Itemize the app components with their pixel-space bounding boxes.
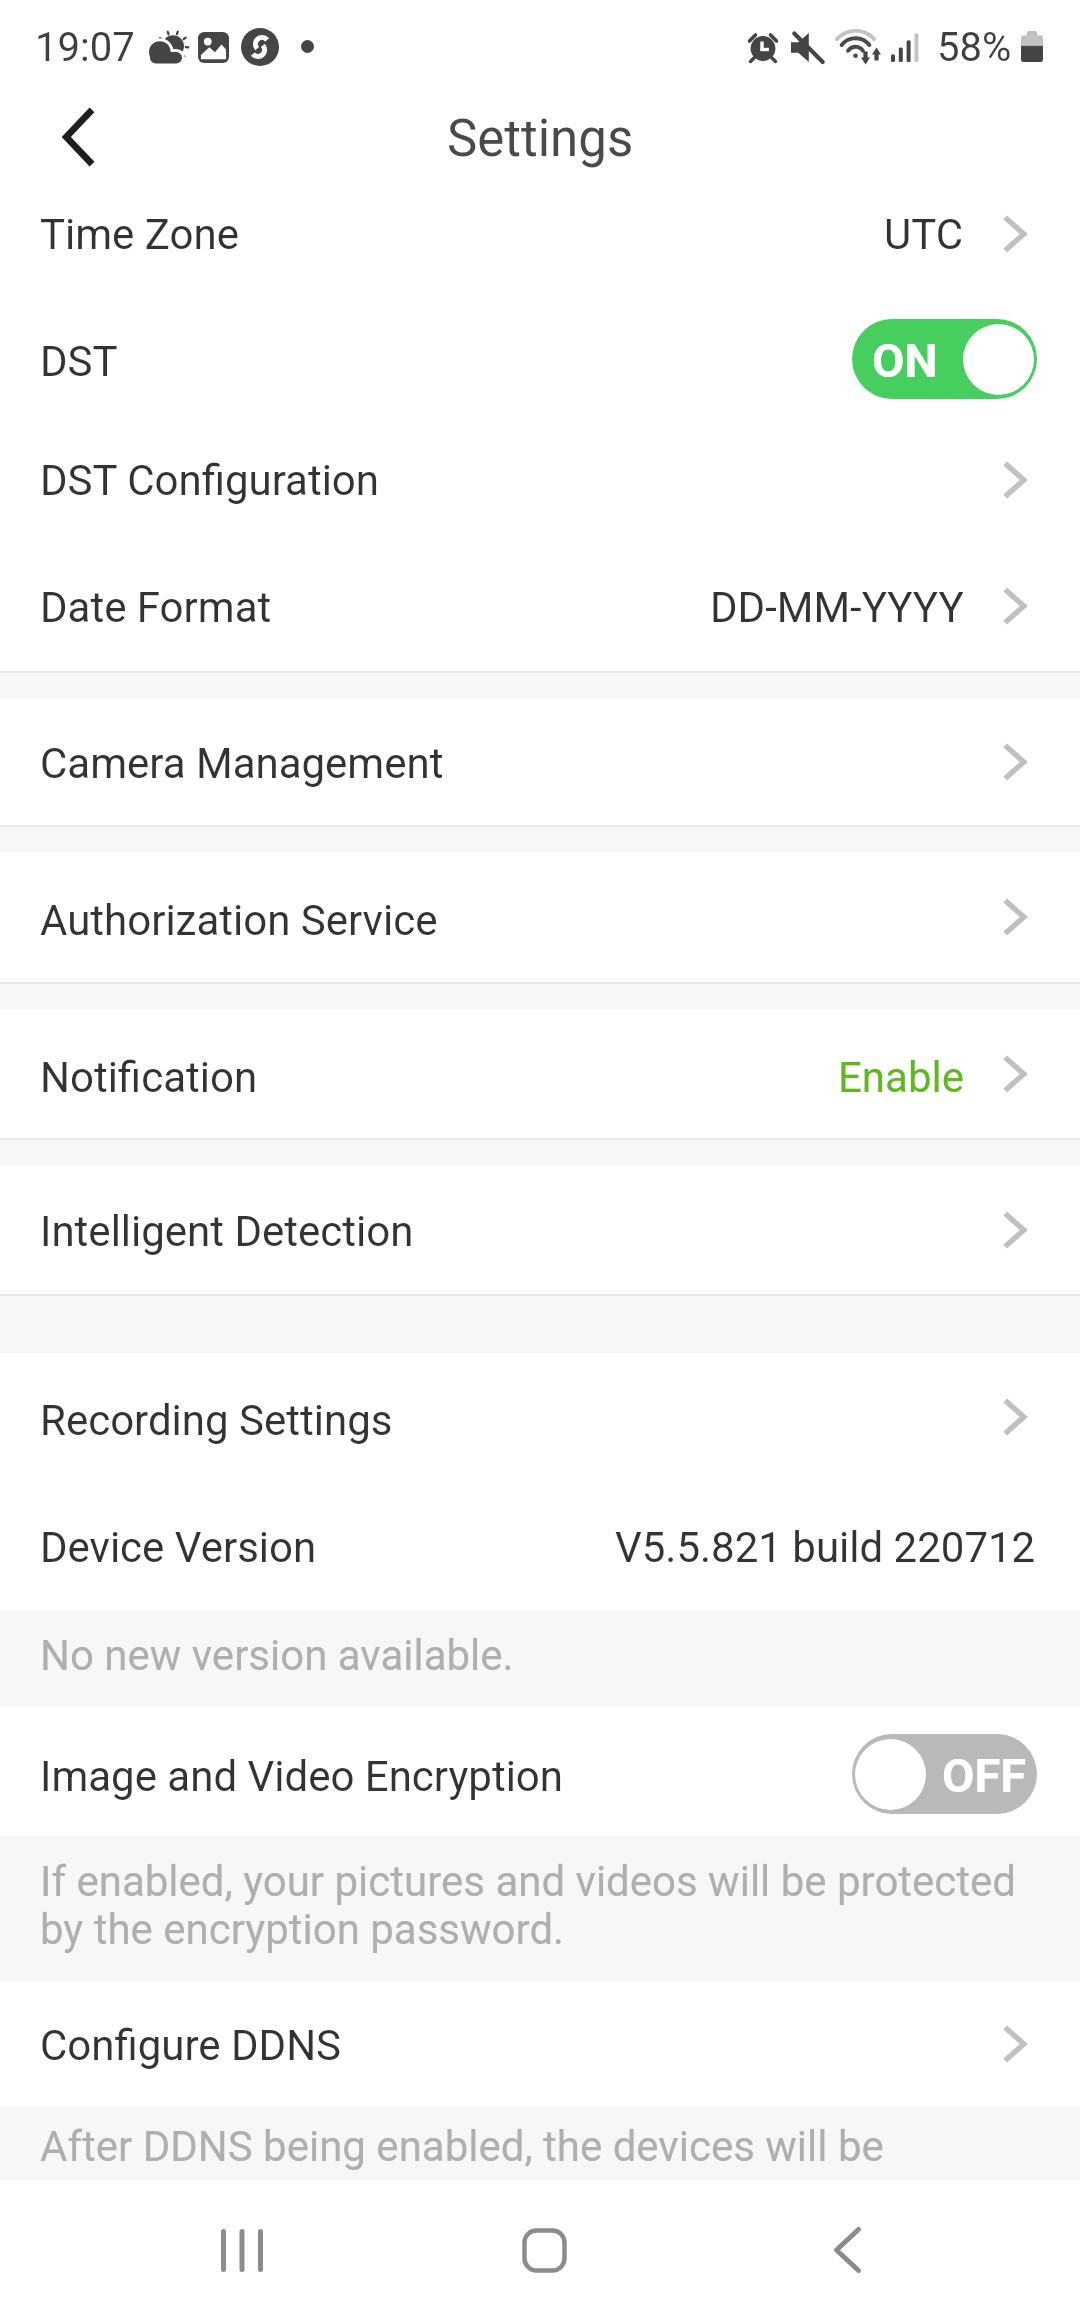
button[interactable]: Image and Video Encryption xyxy=(0,1707,1080,1836)
staticText: Recording Settings xyxy=(40,1396,393,1445)
button[interactable]: Date Format xyxy=(0,541,1080,671)
button[interactable]: Enable xyxy=(852,1734,1037,1814)
staticText: Enable xyxy=(838,1053,964,1102)
button[interactable]: Intelligent Detection xyxy=(0,1165,1080,1294)
staticText: If enabled, your pictures and videos wil… xyxy=(40,1857,1030,1954)
staticText: Image and Video Encryption xyxy=(40,1752,564,1801)
staticText: Configure DDNS xyxy=(40,2021,342,2070)
button[interactable]: Back xyxy=(787,2202,907,2298)
button[interactable]: Recording Settings xyxy=(0,1353,1080,1481)
button[interactable]: Home xyxy=(484,2202,604,2298)
staticText: Time Zone xyxy=(40,210,239,259)
staticText: 58% xyxy=(937,24,1012,71)
staticText: DST xyxy=(40,337,118,386)
button[interactable]: Back xyxy=(36,88,120,172)
staticText: ON xyxy=(872,333,938,388)
staticText: No new version available. xyxy=(40,1631,514,1680)
staticText: Settings xyxy=(447,109,634,169)
button[interactable]: Camera Management xyxy=(0,699,1080,825)
button[interactable]: DST Configuration xyxy=(0,418,1080,541)
staticText: 19:07 xyxy=(35,24,135,71)
button[interactable]: Authorization Service xyxy=(0,852,1080,982)
button[interactable]: DST xyxy=(0,295,1080,418)
staticText: OFF xyxy=(942,1748,1026,1803)
button[interactable]: Time Zone xyxy=(0,172,1080,295)
staticText: After DDNS being enabled, the devices wi… xyxy=(40,2122,884,2171)
staticText: Camera Management xyxy=(40,739,444,788)
button[interactable]: Recent apps xyxy=(182,2202,302,2298)
staticText: Device Version xyxy=(40,1523,317,1572)
staticText: Intelligent Detection xyxy=(40,1207,414,1256)
button[interactable]: Notification xyxy=(0,1010,1080,1138)
button[interactable]: Configure DDNS xyxy=(0,1981,1080,2107)
staticText: DD-MM-YYYY xyxy=(710,583,964,632)
button[interactable]: Device Version xyxy=(0,1481,1080,1611)
staticText: Notification xyxy=(40,1053,258,1102)
staticText: Authorization Service xyxy=(40,896,438,945)
staticText: UTC xyxy=(884,210,964,259)
staticText: V5.5.821 build 220712 xyxy=(615,1523,1036,1572)
staticText: Date Format xyxy=(40,583,272,632)
button[interactable]: Disable xyxy=(852,319,1037,399)
staticText: DST Configuration xyxy=(40,456,380,505)
